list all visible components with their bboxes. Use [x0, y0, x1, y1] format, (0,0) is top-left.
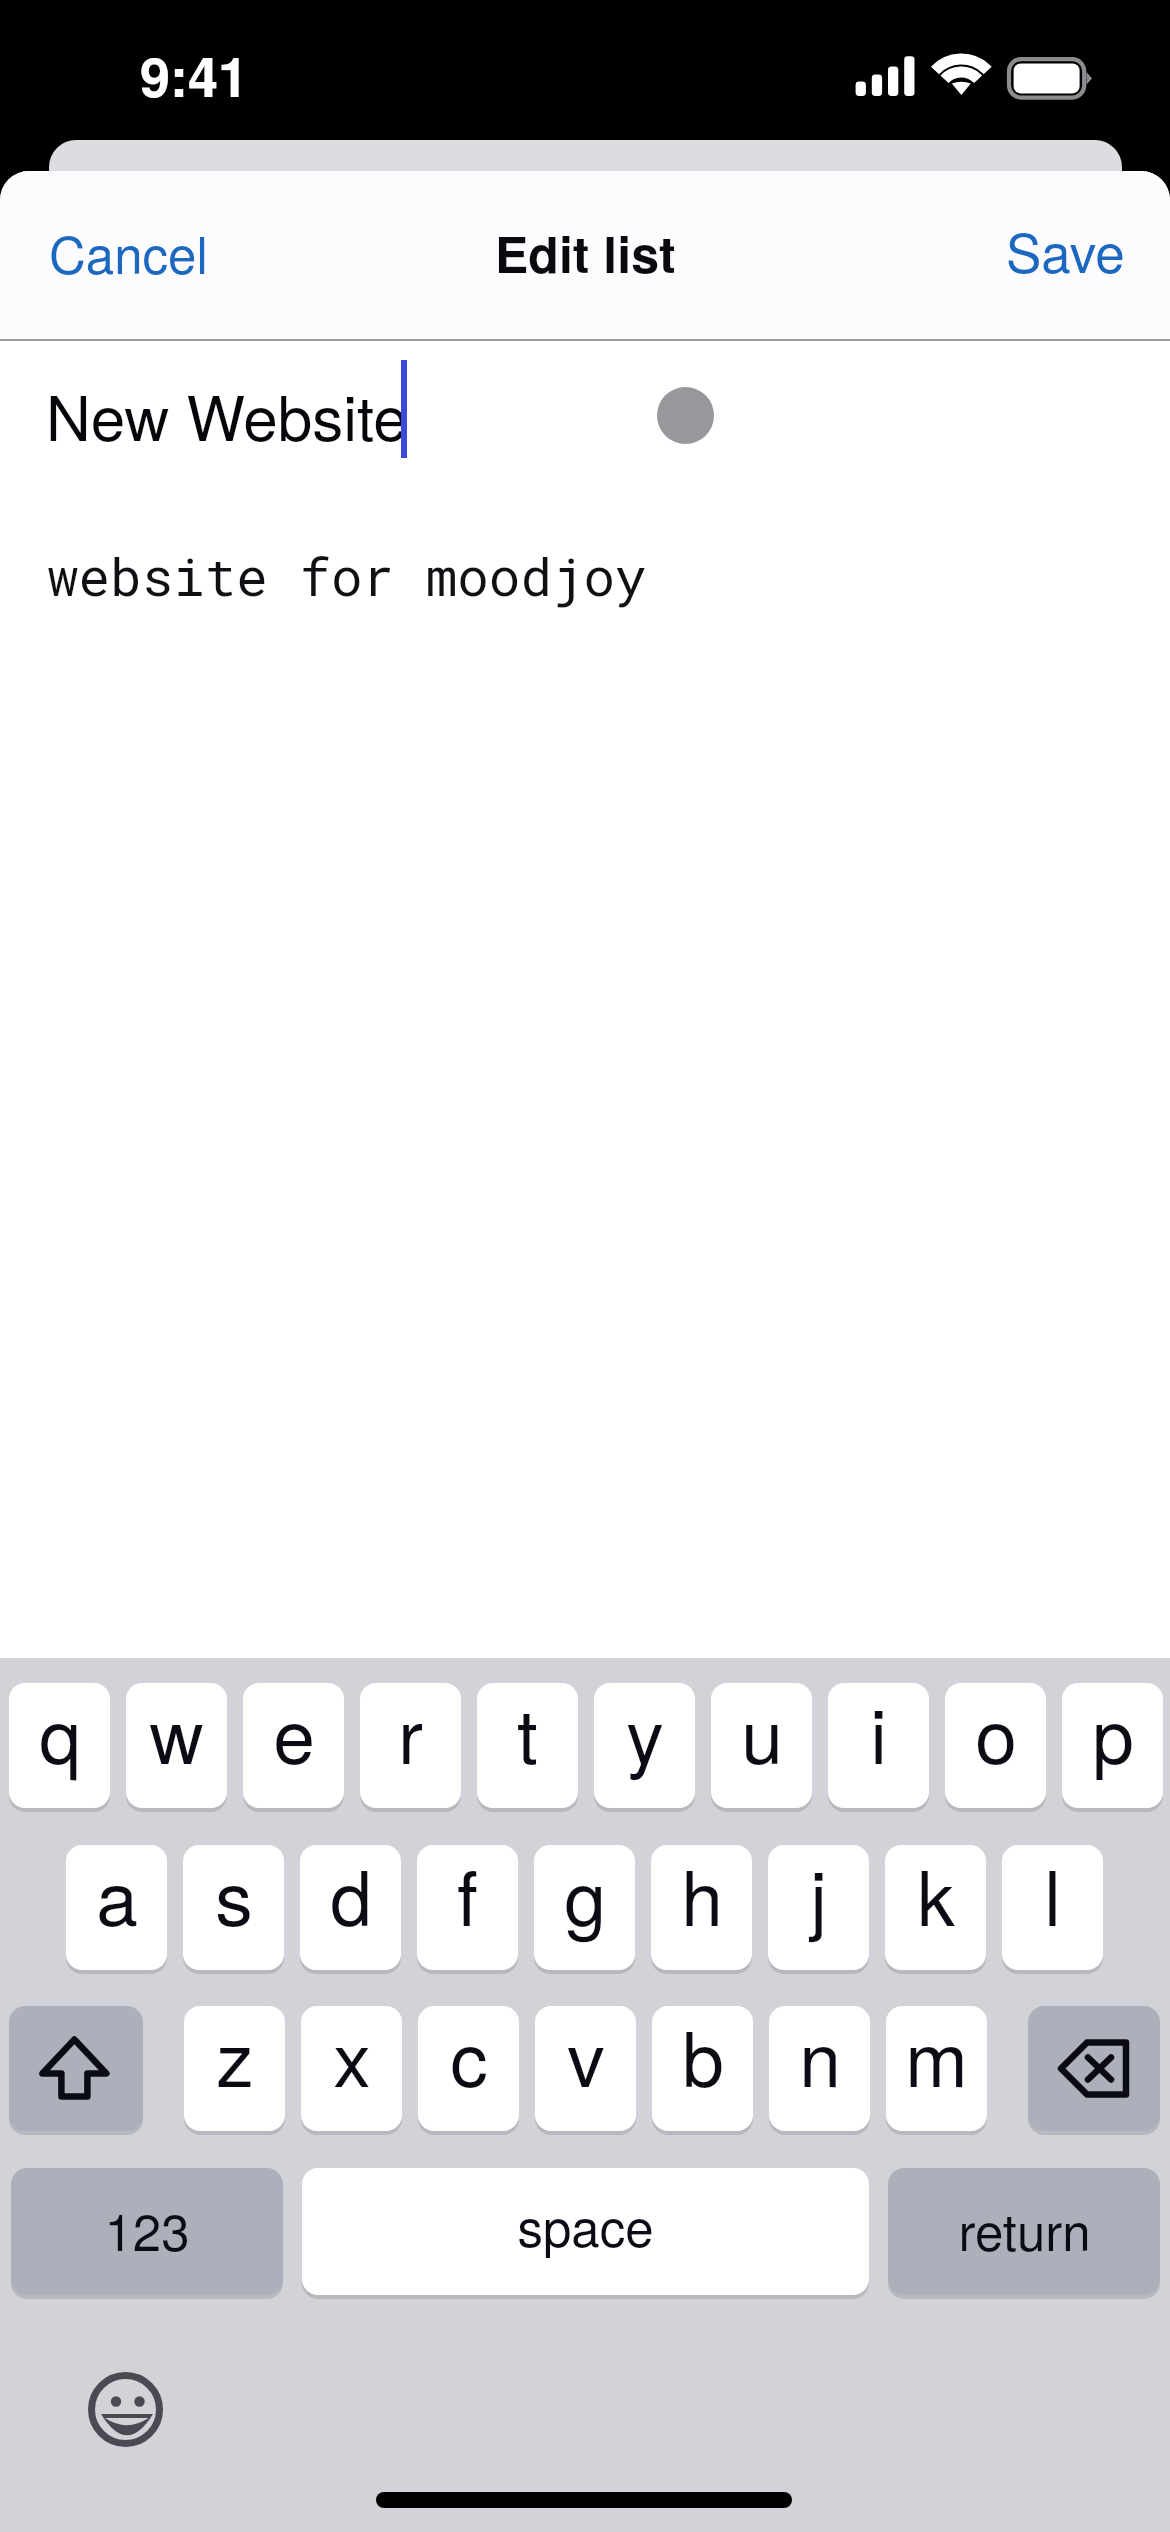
staticText: space: [517, 2188, 654, 2261]
staticText: m: [905, 2006, 968, 2108]
button[interactable]: Emoji keyboard: [86, 2370, 165, 2449]
staticText: Save: [1006, 212, 1125, 288]
button[interactable]: w: [126, 1683, 227, 1808]
staticText: New Website: [46, 370, 408, 459]
button[interactable]: j: [768, 1845, 869, 1970]
button[interactable]: d: [300, 1845, 401, 1970]
staticText: s: [215, 1845, 253, 1947]
staticText: Cancel: [49, 215, 208, 288]
button[interactable]: v: [535, 2006, 636, 2131]
button[interactable]: u: [711, 1683, 812, 1808]
staticText: e: [273, 1683, 315, 1785]
staticText: k: [917, 1845, 955, 1947]
button[interactable]: Shift: [9, 2006, 143, 2131]
staticText: g: [564, 1845, 606, 1947]
button[interactable]: m: [886, 2006, 987, 2131]
button[interactable]: n: [769, 2006, 870, 2131]
staticText: p: [1092, 1683, 1134, 1785]
staticText: 123: [104, 2192, 190, 2265]
button[interactable]: t: [477, 1683, 578, 1808]
button[interactable]: 123: [11, 2168, 283, 2295]
staticText: website for moodjoy: [47, 541, 647, 610]
button[interactable]: e: [243, 1683, 344, 1808]
staticText: u: [741, 1683, 783, 1785]
button[interactable]: r: [360, 1683, 461, 1808]
button[interactable]: a: [66, 1845, 167, 1970]
staticText: o: [975, 1683, 1017, 1785]
button[interactable]: Backspace: [1028, 2006, 1160, 2131]
button[interactable]: Save: [966, 199, 1170, 312]
button[interactable]: c: [418, 2006, 519, 2131]
button[interactable]: return: [888, 2168, 1160, 2295]
button[interactable]: Cancel: [0, 198, 248, 312]
staticText: q: [39, 1683, 81, 1785]
staticText: f: [457, 1845, 478, 1947]
staticText: n: [799, 2006, 841, 2108]
staticText: w: [149, 1683, 204, 1785]
staticText: l: [1044, 1845, 1061, 1947]
staticText: a: [96, 1845, 138, 1947]
staticText: return: [958, 2192, 1091, 2265]
staticText: Edit list: [495, 217, 676, 289]
staticText: 9:41: [140, 36, 249, 113]
staticText: b: [682, 2006, 724, 2108]
staticText: h: [681, 1845, 723, 1947]
button[interactable]: o: [945, 1683, 1046, 1808]
button[interactable]: i: [828, 1683, 929, 1808]
staticText: r: [398, 1683, 423, 1785]
button[interactable]: space: [302, 2168, 869, 2295]
staticText: j: [810, 1845, 827, 1947]
staticText: y: [626, 1683, 664, 1785]
staticText: z: [216, 2006, 254, 2108]
button[interactable]: f: [417, 1845, 518, 1970]
staticText: v: [567, 2006, 605, 2108]
button[interactable]: x: [301, 2006, 402, 2131]
button[interactable]: k: [885, 1845, 986, 1970]
button[interactable]: q: [9, 1683, 110, 1808]
button[interactable]: l: [1002, 1845, 1103, 1970]
staticText: d: [330, 1845, 372, 1947]
staticText: i: [870, 1683, 887, 1785]
button[interactable]: g: [534, 1845, 635, 1970]
staticText: x: [333, 2006, 371, 2108]
button[interactable]: p: [1062, 1683, 1163, 1808]
button[interactable]: List colour: [657, 387, 714, 444]
button[interactable]: b: [652, 2006, 753, 2131]
button[interactable]: h: [651, 1845, 752, 1970]
button[interactable]: z: [184, 2006, 285, 2131]
button[interactable]: y: [594, 1683, 695, 1808]
button[interactable]: s: [183, 1845, 284, 1970]
staticText: t: [517, 1683, 538, 1785]
staticText: c: [450, 2006, 488, 2108]
